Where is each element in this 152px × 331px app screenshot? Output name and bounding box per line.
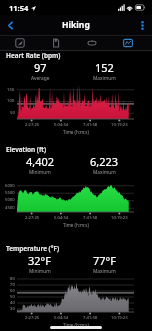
staticText: 50 <box>10 294 15 300</box>
button[interactable]: Back <box>0 15 20 35</box>
staticText: 7:41:58 <box>83 215 98 221</box>
staticText: 4,402 <box>26 154 55 169</box>
staticText: Temperature (°F) <box>6 244 60 253</box>
staticText: 152 <box>95 60 114 75</box>
staticText: 80 <box>10 276 15 282</box>
staticText: 5:04:54 <box>54 122 69 128</box>
staticText: 7:41:58 <box>83 315 98 321</box>
staticText: 10:19:23 <box>111 122 128 128</box>
staticText: 150 <box>7 87 15 93</box>
button[interactable]: Map <box>2 36 38 50</box>
staticText: 6,223 <box>90 154 119 169</box>
staticText: Maximum <box>93 169 116 176</box>
staticText: 10:19:23 <box>111 315 128 321</box>
staticText: 30 <box>10 306 15 312</box>
staticText: 70 <box>10 282 15 288</box>
staticText: Minimum <box>29 268 51 275</box>
staticText: Hiking <box>62 19 90 31</box>
staticText: Time (h:m:s) <box>63 222 89 228</box>
staticText: Maximum <box>93 75 116 82</box>
staticText: Time (h:m:s) <box>63 129 89 135</box>
staticText: 100 <box>7 98 15 104</box>
button[interactable]: Laps <box>74 36 110 50</box>
staticText: 5:04:54 <box>54 215 69 221</box>
staticText: Minimum <box>29 169 51 176</box>
staticText: Time (h:m:s) <box>63 322 89 328</box>
staticText: 5:04:54 <box>54 315 69 321</box>
staticText: 40 <box>10 300 15 306</box>
staticText: 60 <box>10 288 15 294</box>
button[interactable]: More options <box>132 15 152 35</box>
staticText: 6000 <box>5 183 15 189</box>
button[interactable]: Charts <box>110 36 146 50</box>
staticText: 5500 <box>5 190 15 196</box>
staticText: 5000 <box>5 197 15 203</box>
staticText: 11:54 <box>9 3 29 13</box>
staticText: 2:27:25 <box>25 315 40 321</box>
staticText: 10:19:23 <box>111 215 128 221</box>
button[interactable]: Route <box>38 36 74 50</box>
staticText: 2:27:25 <box>25 122 40 128</box>
staticText: Elevation (ft) <box>6 145 47 154</box>
staticText: 4500 <box>5 205 15 211</box>
staticText: 50 <box>10 110 15 116</box>
staticText: Heart Rate (bpm) <box>6 51 61 60</box>
staticText: Average <box>31 75 50 82</box>
staticText: 2:27:25 <box>25 215 40 221</box>
staticText: 97 <box>34 60 47 75</box>
staticText: Maximum <box>93 268 116 275</box>
staticText: 77°F <box>93 253 117 268</box>
staticText: 32°F <box>28 253 52 268</box>
staticText: 7:41:58 <box>83 122 98 128</box>
